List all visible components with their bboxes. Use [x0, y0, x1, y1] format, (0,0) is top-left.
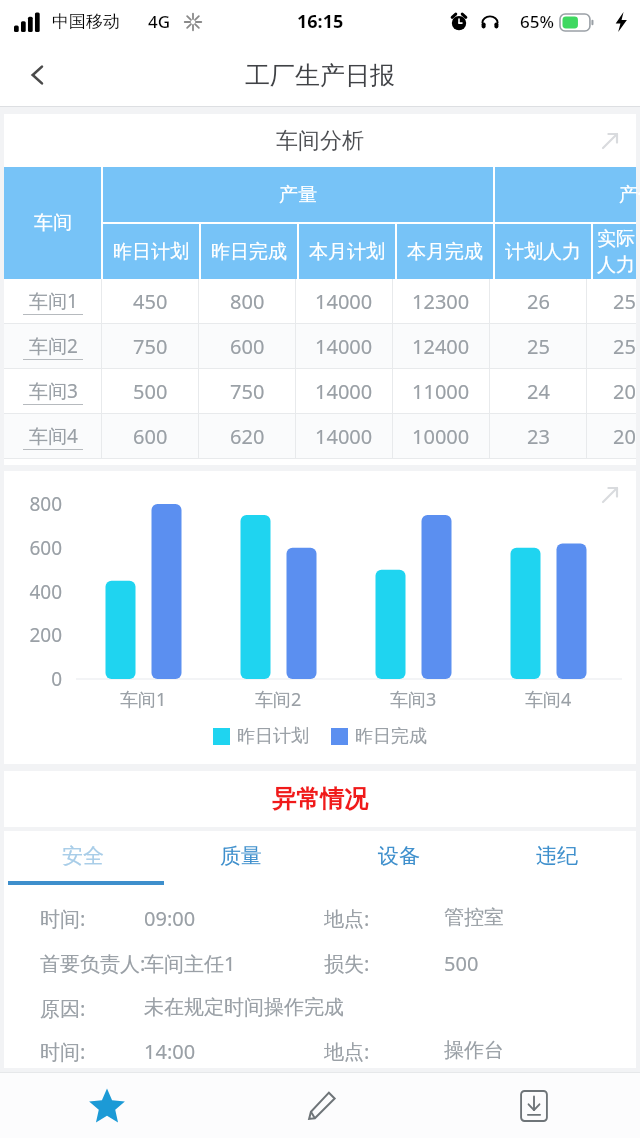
button[interactable]: 车间4: [4, 414, 636, 459]
staticText: 14000: [315, 288, 373, 315]
staticText: 车间3: [29, 378, 78, 404]
staticText: 14000: [315, 378, 373, 405]
staticText: 20: [613, 378, 636, 405]
button[interactable]: 质量: [162, 831, 320, 893]
button[interactable]: 车间1: [4, 279, 636, 324]
staticText: 首要负责人:: [40, 950, 146, 977]
staticText: 09:00: [144, 905, 196, 932]
staticText: 65%: [520, 10, 554, 33]
staticText: 工厂生产日报: [245, 60, 395, 91]
staticText: 4G: [148, 10, 171, 33]
staticText: 质量: [220, 843, 262, 869]
staticText: 620: [230, 423, 265, 450]
staticText: 750: [230, 378, 265, 405]
staticText: 0: [4, 666, 62, 692]
button[interactable]: 安全: [4, 831, 162, 893]
staticText: 中国移动: [52, 11, 120, 32]
staticText: 20: [613, 423, 636, 450]
button[interactable]: Edit: [214, 1073, 427, 1138]
staticText: 车间分析: [276, 127, 364, 155]
staticText: 10000: [412, 423, 470, 450]
button[interactable]: 车间3: [4, 369, 636, 414]
staticText: 本月计划: [309, 240, 385, 264]
staticText: 车间主任1: [144, 950, 236, 977]
staticText: 时间:: [40, 1038, 86, 1065]
staticText: 管控室: [444, 905, 504, 930]
staticText: 车间1: [120, 687, 167, 712]
staticText: 12300: [412, 288, 470, 315]
staticText: 地点:: [324, 1038, 370, 1065]
button[interactable]: Back: [10, 47, 66, 103]
staticText: 400: [4, 579, 62, 605]
staticText: 计划人力: [505, 240, 581, 264]
staticText: 23: [527, 423, 550, 450]
button[interactable]: Download: [427, 1073, 640, 1138]
staticText: 600: [230, 333, 265, 360]
staticText: 车间4: [29, 423, 78, 449]
staticText: 车间: [34, 211, 72, 235]
staticText: 14:00: [144, 1038, 196, 1065]
staticText: 车间1: [29, 288, 78, 314]
staticText: 14000: [315, 423, 373, 450]
staticText: 昨日完成: [211, 240, 287, 264]
staticText: 车间3: [390, 687, 437, 712]
staticText: 26: [527, 288, 550, 315]
staticText: 产量: [279, 183, 317, 207]
staticText: 违纪: [536, 843, 578, 869]
staticText: 操作台: [444, 1038, 504, 1063]
staticText: 车间2: [29, 333, 78, 359]
button[interactable]: Expand: [590, 121, 630, 161]
staticText: 原因:: [40, 995, 86, 1022]
staticText: 安全: [62, 843, 104, 869]
staticText: 设备: [378, 843, 420, 869]
staticText: 车间4: [525, 687, 572, 712]
staticText: 昨日完成: [355, 725, 427, 748]
button[interactable]: 车间2: [4, 324, 636, 369]
staticText: 11000: [412, 378, 470, 405]
staticText: 地点:: [324, 905, 370, 932]
button[interactable]: Expand chart: [590, 475, 630, 515]
staticText: 昨日计划: [237, 725, 309, 748]
staticText: 24: [527, 378, 550, 405]
staticText: 产值: [619, 183, 640, 207]
staticText: 车间2: [255, 687, 302, 712]
staticText: 200: [4, 622, 62, 648]
staticText: 实际人力: [597, 227, 640, 277]
staticText: 昨日计划: [113, 240, 189, 264]
staticText: 600: [133, 423, 168, 450]
button[interactable]: 违纪: [478, 831, 636, 893]
staticText: 500: [133, 378, 168, 405]
staticText: 800: [230, 288, 265, 315]
staticText: 750: [133, 333, 168, 360]
staticText: 损失:: [324, 950, 370, 977]
button[interactable]: 设备: [320, 831, 478, 893]
staticText: 600: [4, 535, 62, 561]
staticText: 25: [527, 333, 550, 360]
staticText: 未在规定时间操作完成: [144, 995, 344, 1020]
staticText: 本月完成: [407, 240, 483, 264]
staticText: 800: [4, 491, 62, 517]
staticText: 25: [613, 333, 636, 360]
staticText: 25: [613, 288, 636, 315]
staticText: 异常情况: [272, 784, 368, 814]
staticText: 14000: [315, 333, 373, 360]
staticText: 16:15: [297, 9, 344, 34]
staticText: 500: [444, 950, 479, 977]
button[interactable]: Favorite: [0, 1073, 214, 1138]
staticText: 12400: [412, 333, 470, 360]
staticText: 450: [133, 288, 168, 315]
staticText: 时间:: [40, 905, 86, 932]
